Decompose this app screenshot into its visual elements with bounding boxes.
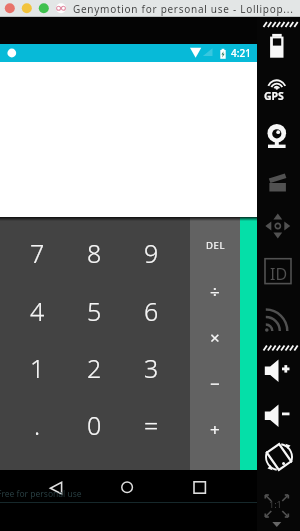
button[interactable]: Home bbox=[116, 476, 138, 498]
staticText: × bbox=[210, 326, 220, 349]
staticText: GPS bbox=[264, 89, 284, 103]
button[interactable]: 3 bbox=[123, 339, 180, 396]
staticText: 4:21 bbox=[231, 46, 251, 60]
staticText: 1:1 bbox=[269, 498, 282, 510]
staticText: 0 bbox=[87, 408, 102, 442]
button[interactable]: Plus bbox=[190, 406, 240, 452]
staticText: 1 bbox=[30, 351, 45, 385]
button[interactable]: 8 bbox=[66, 224, 123, 282]
button[interactable]: 2 bbox=[66, 339, 123, 396]
staticText: 9 bbox=[144, 236, 159, 270]
staticText: . bbox=[34, 408, 41, 442]
staticText: 5 bbox=[87, 294, 102, 328]
button[interactable]: 0 bbox=[66, 396, 123, 453]
staticText: 4 bbox=[30, 294, 45, 328]
staticText: 7 bbox=[30, 236, 45, 270]
button[interactable]: Delete bbox=[190, 223, 240, 268]
staticText: Free for personal use bbox=[0, 488, 82, 500]
button[interactable]: Recent apps bbox=[189, 476, 211, 498]
other: Genymotion toolbar bbox=[257, 17, 300, 531]
staticText: + bbox=[210, 418, 220, 441]
staticText: Genymotion for personal use - Lollipop..… bbox=[73, 2, 294, 16]
staticText: 2 bbox=[87, 351, 102, 385]
button[interactable]: 5 bbox=[66, 282, 123, 339]
staticText: = bbox=[144, 408, 159, 442]
staticText: ID bbox=[270, 263, 288, 285]
button[interactable]: Divide bbox=[190, 268, 240, 314]
button[interactable]: = bbox=[123, 396, 180, 453]
staticText: 3 bbox=[144, 351, 159, 385]
button[interactable]: Multiply bbox=[190, 314, 240, 360]
staticText: 6 bbox=[144, 294, 159, 328]
button[interactable]: 6 bbox=[123, 282, 180, 339]
button[interactable]: 7 bbox=[8, 224, 66, 282]
staticText: 8 bbox=[87, 236, 102, 270]
staticText: DEL bbox=[206, 239, 225, 252]
button[interactable]: 1 bbox=[8, 339, 66, 396]
button[interactable]: . bbox=[8, 396, 66, 453]
button[interactable]: Minus bbox=[190, 360, 240, 406]
staticText: ÷ bbox=[210, 280, 220, 303]
staticText: − bbox=[210, 372, 220, 395]
button[interactable]: Back bbox=[45, 477, 67, 499]
button[interactable]: 4 bbox=[8, 282, 66, 339]
button[interactable]: 9 bbox=[123, 224, 180, 282]
